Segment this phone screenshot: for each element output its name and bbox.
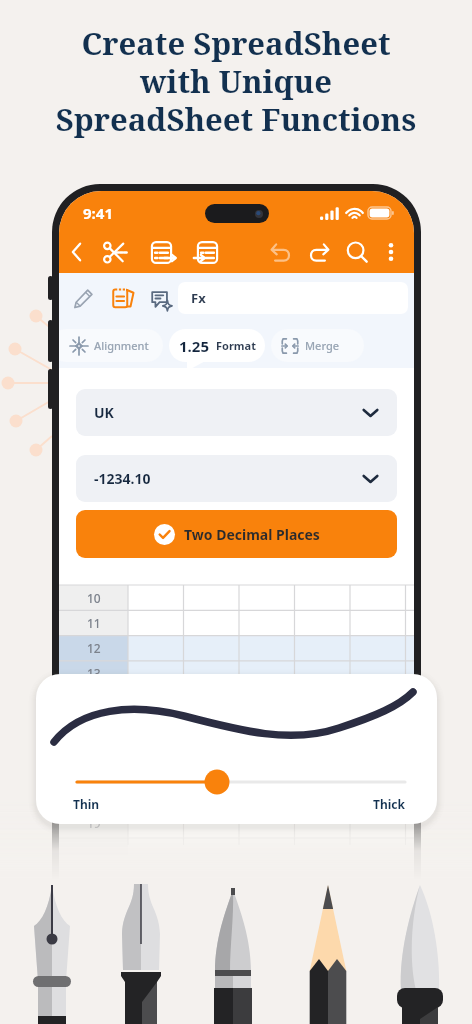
staticText: 10	[87, 590, 101, 606]
button[interactable]: Cut	[99, 235, 133, 269]
staticText: 9:41	[83, 203, 113, 223]
button[interactable]: -1234.10	[76, 455, 397, 502]
staticText: Create SpreadSheet with Unique SpreadShe…	[0, 22, 472, 140]
button[interactable]: Fx	[178, 282, 408, 314]
button[interactable]: UK	[76, 389, 397, 436]
button[interactable]: Two Decimal Places	[76, 510, 397, 558]
staticText: 11	[87, 615, 101, 631]
button[interactable]: Merge	[271, 329, 364, 362]
staticText: 15	[87, 715, 101, 731]
staticText: 1.25	[179, 336, 209, 356]
button[interactable]: Alignment	[59, 329, 163, 362]
button[interactable]: Back	[60, 235, 94, 269]
button[interactable]: Edit	[68, 283, 98, 313]
button[interactable]: Insert row after	[144, 235, 178, 269]
button[interactable]: Undo	[263, 235, 297, 269]
button[interactable]: Search	[340, 235, 374, 269]
button[interactable]: Sheets	[106, 283, 136, 313]
staticText: Fx	[191, 289, 206, 307]
staticText: Thin	[73, 796, 100, 812]
button[interactable]: Redo	[302, 235, 336, 269]
staticText: 13	[87, 665, 101, 681]
button[interactable]: Insert row before	[190, 235, 224, 269]
staticText: 19	[87, 815, 101, 831]
staticText: Thick	[373, 796, 405, 812]
button[interactable]: 1.25	[169, 329, 265, 362]
staticText: Format	[216, 338, 256, 353]
staticText: Merge	[305, 338, 340, 353]
staticText: Two Decimal Places	[184, 525, 320, 544]
staticText: -1234.10	[94, 469, 151, 488]
button[interactable]: Smart comment	[145, 283, 175, 313]
button[interactable]: More options	[374, 235, 408, 269]
staticText: 17	[87, 765, 101, 781]
staticText: Alignment	[94, 338, 149, 353]
staticText: UK	[94, 403, 114, 422]
staticText: 12	[87, 640, 101, 656]
staticText: 18	[87, 790, 101, 806]
